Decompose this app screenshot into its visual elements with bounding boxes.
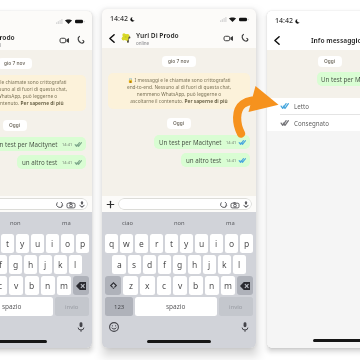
button[interactable]: v: [9, 276, 23, 295]
button[interactable]: i: [210, 234, 223, 253]
button[interactable]: x: [140, 276, 155, 295]
button[interactable]: Back: [107, 31, 116, 45]
staticText: o: [65, 238, 71, 250]
staticText: Info messaggio: [311, 36, 360, 45]
button[interactable]: Letto: [267, 98, 360, 114]
button[interactable]: non: [0, 212, 41, 233]
staticText: Consegnato: [294, 119, 330, 127]
button[interactable]: ma: [205, 212, 256, 233]
staticText: h: [28, 259, 34, 271]
button[interactable]: j: [39, 255, 52, 274]
button[interactable]: invio: [219, 297, 253, 316]
button[interactable]: e: [135, 234, 148, 253]
button[interactable]: b: [189, 276, 203, 295]
staticText: 🔒 I messaggi e le chiamate sono crittogr…: [112, 77, 246, 105]
button[interactable]: q: [105, 234, 118, 253]
button[interactable]: g: [9, 255, 22, 274]
button[interactable]: t: [1, 234, 14, 253]
button[interactable]: invio: [55, 297, 89, 316]
staticText: un altro test: [186, 156, 222, 164]
staticText: b: [29, 280, 35, 292]
button[interactable]: j: [203, 255, 216, 274]
button[interactable]: Attach: [106, 200, 115, 209]
button[interactable]: y: [16, 234, 29, 253]
button[interactable]: Dictate: [241, 322, 249, 332]
button[interactable]: spazio: [0, 297, 53, 316]
staticText: Un test per Macitynet: [159, 138, 222, 146]
button[interactable]: spazio: [135, 297, 217, 316]
button[interactable]: Consegnato: [267, 115, 360, 131]
button[interactable]: Backspace: [73, 276, 89, 295]
button[interactable]: i: [46, 234, 59, 253]
button[interactable]: Video call: [59, 36, 70, 45]
button[interactable]: r: [150, 234, 163, 253]
button[interactable]: s: [128, 255, 141, 274]
button[interactable]: f: [0, 255, 7, 274]
button[interactable]: o: [225, 234, 238, 253]
button[interactable]: o: [61, 234, 74, 253]
button[interactable]: p: [240, 234, 253, 253]
button[interactable]: h: [24, 255, 37, 274]
button[interactable]: l: [69, 255, 82, 274]
staticText: z: [129, 280, 133, 292]
staticText: n: [45, 280, 51, 292]
button[interactable]: Video call: [223, 34, 234, 43]
button[interactable]: m: [221, 276, 235, 295]
button[interactable]: non: [154, 212, 205, 233]
button[interactable]: Emoji: [109, 322, 119, 332]
staticText: q: [109, 238, 115, 250]
button[interactable]: 123: [105, 297, 133, 316]
staticText: e: [139, 238, 144, 250]
staticText: u: [35, 238, 41, 250]
button[interactable]: m: [57, 276, 71, 295]
button[interactable]: Message: [0, 198, 88, 210]
button[interactable]: Voice call: [76, 35, 86, 45]
button[interactable]: z: [123, 276, 138, 295]
button[interactable]: u: [31, 234, 44, 253]
button[interactable]: Back: [272, 33, 281, 47]
button[interactable]: ma: [41, 212, 92, 233]
button[interactable]: t: [165, 234, 178, 253]
button[interactable]: Shift: [105, 276, 121, 295]
button[interactable]: w: [120, 234, 133, 253]
staticText: m: [60, 280, 68, 292]
button[interactable]: Dictate: [77, 322, 85, 332]
button[interactable]: c: [157, 276, 171, 295]
staticText: spazio: [166, 302, 186, 311]
button[interactable]: y: [180, 234, 193, 253]
button[interactable]: v: [173, 276, 187, 295]
button[interactable]: h: [188, 255, 201, 274]
button[interactable]: k: [54, 255, 67, 274]
staticText: g: [177, 259, 183, 271]
button[interactable]: b: [25, 276, 39, 295]
button[interactable]: l: [233, 255, 246, 274]
button[interactable]: u: [195, 234, 208, 253]
staticText: o: [229, 238, 235, 250]
staticText: t: [170, 238, 174, 250]
button[interactable]: f: [158, 255, 171, 274]
staticText: c: [0, 280, 3, 292]
staticText: x: [145, 280, 150, 292]
staticText: v: [14, 280, 19, 292]
button[interactable]: ciao: [102, 212, 154, 233]
button[interactable]: g: [173, 255, 186, 274]
button[interactable]: p: [76, 234, 89, 253]
button[interactable]: n: [41, 276, 55, 295]
button[interactable]: Voice call: [240, 33, 250, 43]
button[interactable]: n: [205, 276, 219, 295]
staticText: i: [215, 238, 218, 250]
staticText: u: [199, 238, 205, 250]
staticText: y: [20, 238, 25, 250]
button[interactable]: k: [218, 255, 231, 274]
staticText: d: [147, 259, 153, 271]
button[interactable]: c: [0, 276, 7, 295]
staticText: l: [74, 259, 77, 271]
staticText: 14:41: [62, 160, 73, 165]
button[interactable]: a: [112, 255, 126, 274]
button[interactable]: d: [143, 255, 156, 274]
staticText: k: [58, 259, 63, 271]
staticText: j: [208, 259, 211, 271]
button[interactable]: Message: [118, 198, 252, 210]
button[interactable]: Backspace: [237, 276, 253, 295]
staticText: non: [174, 219, 185, 227]
